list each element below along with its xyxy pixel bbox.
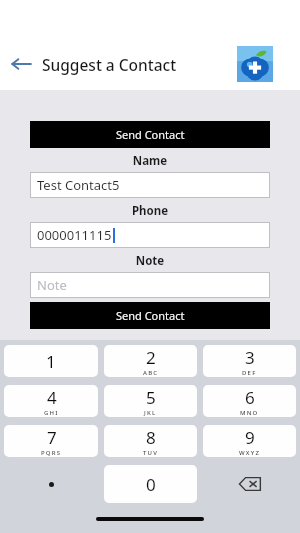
button[interactable]: 6 xyxy=(203,385,296,417)
staticText: Note xyxy=(37,276,67,294)
staticText: 2 xyxy=(146,346,156,369)
staticText: Phone xyxy=(0,203,300,219)
staticText: Send Contact xyxy=(116,308,185,323)
button[interactable]: Note xyxy=(30,272,270,298)
button[interactable]: 9 xyxy=(203,425,296,457)
staticText: 4 xyxy=(47,386,57,409)
button[interactable]: 7 xyxy=(4,425,98,457)
button[interactable]: 4 xyxy=(4,385,98,417)
staticText: MNO xyxy=(240,409,259,417)
staticText: WXYZ xyxy=(239,449,261,457)
staticText: Send Contact xyxy=(116,127,185,142)
button[interactable]: 0 xyxy=(104,465,197,503)
staticText: DEF xyxy=(242,369,257,377)
staticText: TUV xyxy=(143,449,159,457)
button[interactable]: Back xyxy=(6,49,36,79)
button[interactable]: Test Contact5 xyxy=(30,172,270,198)
button[interactable]: 3 xyxy=(203,345,296,377)
button[interactable]: Send Contact xyxy=(30,302,270,329)
staticText: 0 xyxy=(146,473,156,496)
button[interactable]: 0000011115 xyxy=(30,222,270,248)
button[interactable]: 1 xyxy=(4,345,98,377)
staticText: 9 xyxy=(245,426,255,449)
staticText: PQRS xyxy=(41,449,62,457)
button[interactable]: App icon xyxy=(237,46,273,82)
staticText: 5 xyxy=(146,386,156,409)
staticText: Suggest a Contact xyxy=(42,54,177,75)
staticText: Test Contact5 xyxy=(37,176,120,194)
button[interactable]: 8 xyxy=(104,425,197,457)
button[interactable]: 5 xyxy=(104,385,197,417)
staticText: Note xyxy=(0,253,300,269)
button[interactable]: Period xyxy=(4,465,98,503)
button[interactable]: Send Contact xyxy=(30,121,270,148)
button[interactable]: Backspace xyxy=(203,465,296,503)
staticText: GHI xyxy=(44,409,59,417)
staticText: 6 xyxy=(245,386,255,409)
staticText: 1 xyxy=(46,350,56,373)
staticText: JKL xyxy=(144,409,157,417)
staticText: ABC xyxy=(143,369,159,377)
staticText: 0000011115 xyxy=(37,226,112,244)
staticText: 3 xyxy=(245,346,255,369)
staticText: 8 xyxy=(146,426,156,449)
button[interactable]: 2 xyxy=(104,345,197,377)
staticText: 7 xyxy=(47,426,57,449)
staticText: Name xyxy=(0,153,300,169)
